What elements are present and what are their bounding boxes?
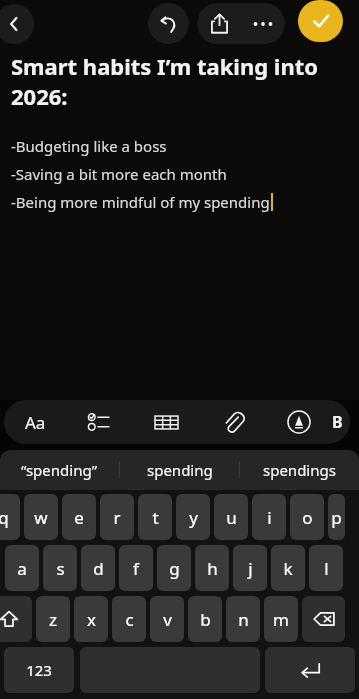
button[interactable]: h (195, 545, 229, 591)
button[interactable]: More options (241, 3, 285, 44)
button[interactable]: spendings (240, 450, 359, 490)
staticText: l (324, 557, 329, 580)
staticText: k (283, 557, 293, 580)
button[interactable]: b (188, 596, 222, 642)
button[interactable]: “spending” (0, 450, 119, 490)
staticText: c (125, 608, 134, 631)
button[interactable]: m (264, 596, 298, 642)
staticText: i (267, 506, 272, 529)
staticText: m (273, 608, 289, 631)
staticText: B (332, 411, 343, 433)
button[interactable]: spending (120, 450, 239, 490)
button[interactable]: Undo (148, 3, 189, 44)
staticText: o (302, 506, 313, 529)
staticText: y (189, 506, 198, 529)
button[interactable]: s (43, 545, 77, 591)
staticText: j (248, 557, 253, 580)
staticText: z (49, 608, 57, 631)
button[interactable]: n (226, 596, 260, 642)
staticText: t (152, 506, 159, 529)
staticText: -Saving a bit more each month (11, 164, 227, 184)
staticText: -Budgeting like a boss (11, 136, 167, 156)
staticText: 123 (26, 660, 52, 680)
staticText: s (56, 557, 65, 580)
staticText: a (17, 557, 27, 580)
staticText: e (74, 506, 84, 529)
button[interactable]: d (81, 545, 115, 591)
button[interactable]: 123 (4, 647, 74, 693)
button[interactable]: Markup (266, 400, 332, 444)
staticText: spending (147, 460, 213, 480)
button[interactable]: e (62, 494, 96, 540)
staticText: -Being more mindful of my spending (11, 192, 270, 212)
staticText: f (133, 557, 139, 580)
button[interactable]: k (271, 545, 305, 591)
button[interactable]: Share (197, 3, 241, 44)
button[interactable]: t (138, 494, 172, 540)
button[interactable]: Aa (4, 400, 66, 444)
button[interactable]: x (74, 596, 108, 642)
staticText: Smart habits I’m taking into 2026: (11, 51, 321, 111)
button[interactable]: v (150, 596, 184, 642)
staticText: Aa (25, 411, 46, 434)
button[interactable]: u (214, 494, 248, 540)
button[interactable]: p (328, 494, 345, 540)
button[interactable]: f (119, 545, 153, 591)
button[interactable]: j (233, 545, 267, 591)
staticText: b (200, 608, 211, 631)
staticText: g (169, 557, 180, 580)
staticText: h (207, 557, 218, 580)
staticText: u (226, 506, 237, 529)
staticText: spendings (263, 460, 336, 480)
button[interactable]: B (332, 400, 350, 444)
button[interactable]: w (24, 494, 58, 540)
button[interactable] (265, 647, 355, 693)
staticText: r (113, 506, 121, 529)
button[interactable]: Checklist (66, 400, 132, 444)
button[interactable]: a (5, 545, 39, 591)
button[interactable]: r (100, 494, 134, 540)
button[interactable]: Back (0, 4, 34, 44)
staticText: v (163, 608, 172, 631)
staticText: w (34, 506, 48, 529)
button[interactable]: g (157, 545, 191, 591)
button[interactable] (302, 596, 345, 642)
button[interactable]: l (309, 545, 343, 591)
button[interactable]: i (252, 494, 286, 540)
button[interactable]: o (290, 494, 324, 540)
staticText: n (238, 608, 249, 631)
staticText: “spending” (21, 460, 98, 480)
button[interactable]: q (0, 494, 20, 540)
staticText: p (331, 506, 342, 529)
button[interactable]: Attach (200, 400, 266, 444)
button[interactable]: Table (132, 400, 200, 444)
button[interactable]: c (112, 596, 146, 642)
button[interactable]: z (36, 596, 70, 642)
staticText: x (87, 608, 96, 631)
button[interactable]: y (176, 494, 210, 540)
staticText: d (93, 557, 104, 580)
button[interactable]: Done (298, 0, 343, 42)
button[interactable] (0, 596, 32, 642)
staticText: q (0, 506, 9, 529)
